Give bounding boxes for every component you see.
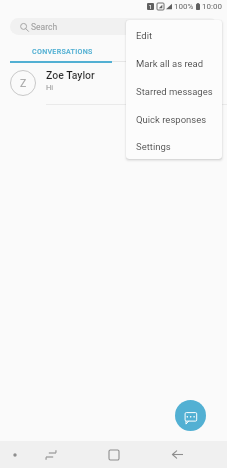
staticText: Z [20,77,27,89]
staticText: Starred messages [136,86,213,97]
button[interactable]: Recent apps [31,441,71,468]
staticText: Hi [46,83,54,92]
button[interactable]: Home [94,441,134,468]
button[interactable]: New conversation [175,400,206,431]
button[interactable]: Search [10,18,218,35]
button[interactable]: Mark all as read [126,49,222,77]
staticText: 100% [174,2,194,11]
button[interactable]: Edit [126,21,222,49]
staticText: Mark all as read [136,58,204,69]
button[interactable]: Starred messages [126,77,222,105]
staticText: 10:00 [202,2,222,11]
button[interactable]: Back [157,441,197,468]
staticText: Settings [136,141,171,152]
staticText: CONVERSATIONS [32,47,93,55]
button[interactable]: Menu [0,441,35,468]
staticText: Edit [136,30,153,41]
staticText: Quick responses [136,114,207,125]
staticText: Search [31,22,58,32]
staticText: Zoe Taylor [46,69,95,81]
button[interactable]: Z [0,62,227,105]
staticText: 1 [149,4,152,10]
button[interactable]: CONVERSATIONS [12,42,112,60]
button[interactable]: Settings [126,133,222,159]
button[interactable]: Quick responses [126,105,222,133]
